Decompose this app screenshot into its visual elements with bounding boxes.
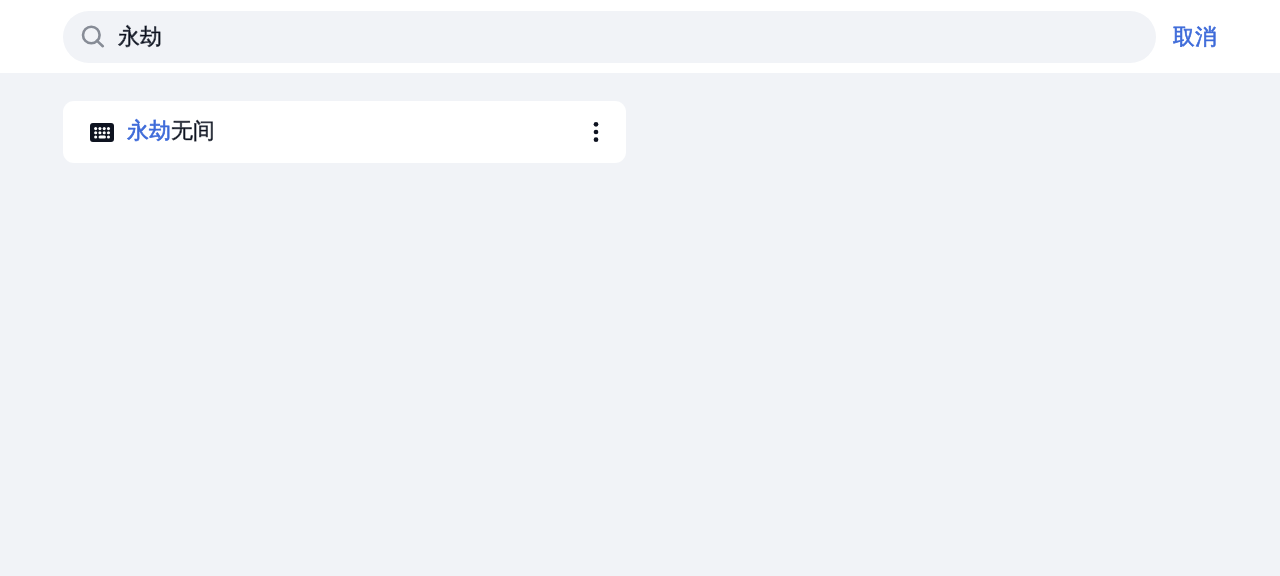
staticText: 取消 bbox=[1173, 23, 1217, 51]
staticText: 永劫 bbox=[118, 23, 162, 51]
button[interactable]: 永劫无间 bbox=[63, 101, 626, 163]
staticText: 永劫 bbox=[118, 23, 162, 51]
staticText: 永劫无间 bbox=[127, 117, 215, 145]
button[interactable]: 永劫 bbox=[63, 11, 1156, 63]
button[interactable]: 取消 bbox=[1167, 11, 1223, 63]
staticText: 取消 bbox=[1173, 23, 1217, 51]
staticText: 永劫无间 bbox=[127, 117, 215, 145]
button[interactable]: More options bbox=[572, 108, 620, 156]
